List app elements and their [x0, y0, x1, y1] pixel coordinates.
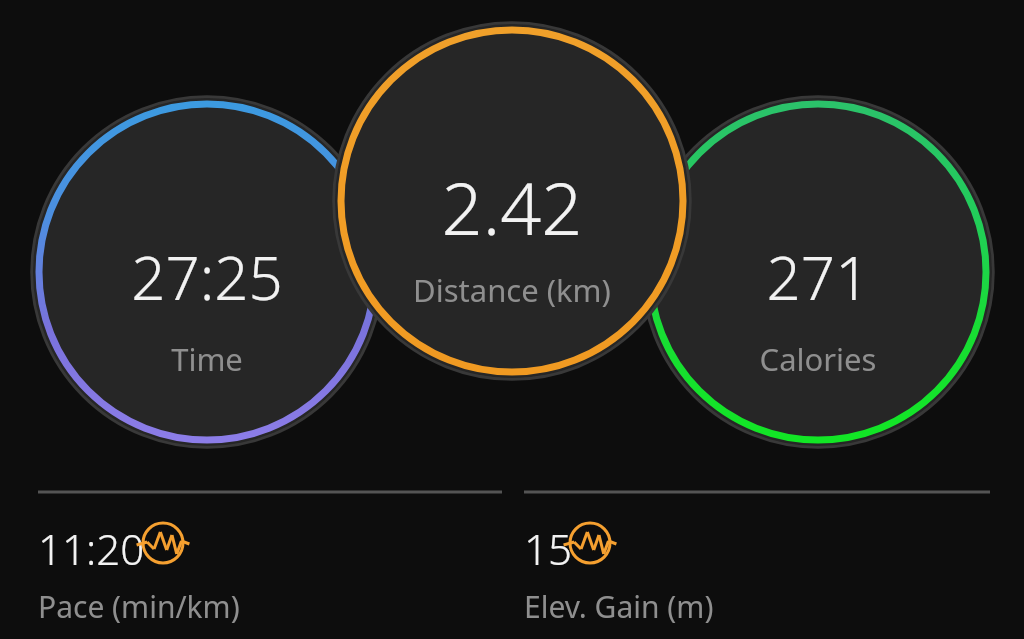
- button[interactable]: Workout summary metrics: [0, 0, 1024, 639]
